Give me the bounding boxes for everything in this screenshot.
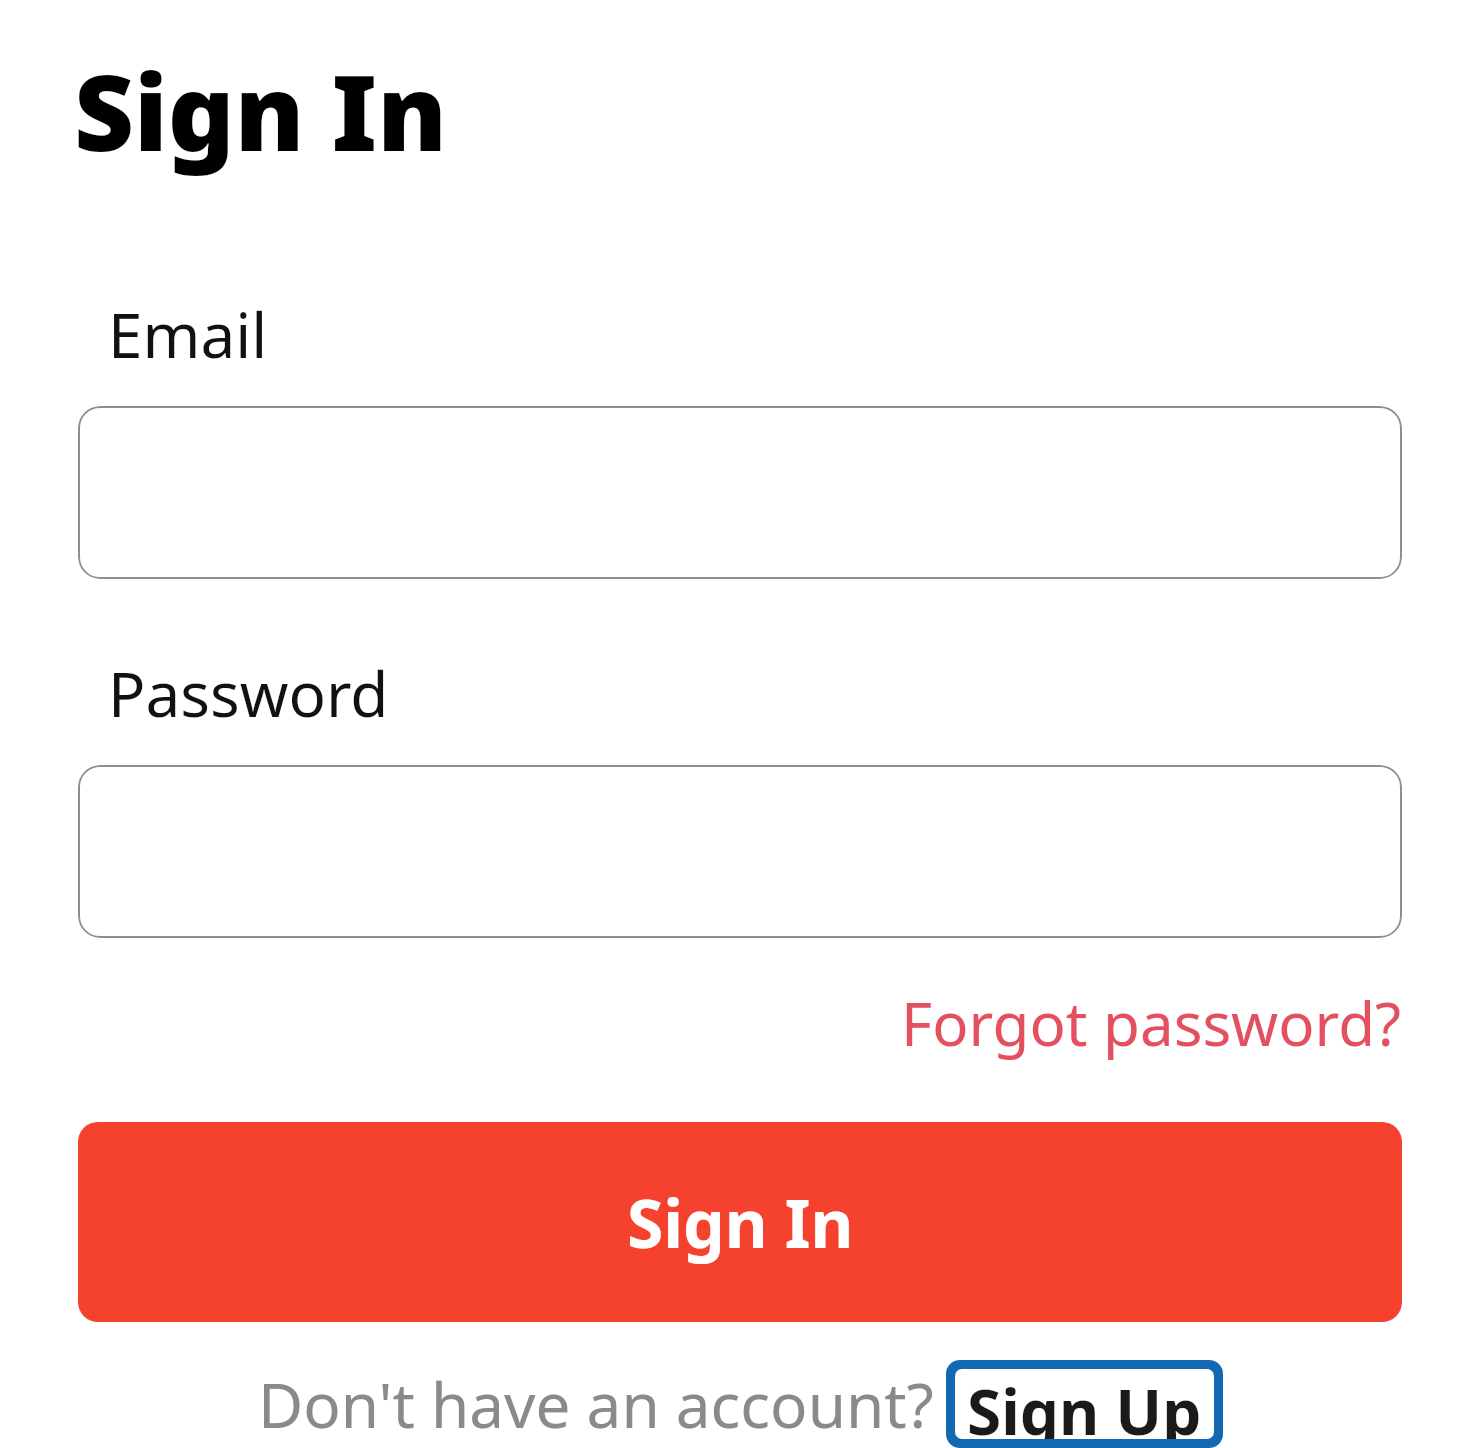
staticText: Email [108, 292, 268, 376]
button[interactable]: Sign In [78, 1122, 1402, 1322]
staticText: Don't have an account? [258, 1362, 934, 1446]
staticText: Sign In [74, 40, 447, 182]
button[interactable]: Email input field [78, 406, 1402, 579]
staticText: Forgot password? [901, 982, 1402, 1064]
staticText: Sign In [627, 1177, 854, 1267]
staticText: Password [108, 651, 389, 735]
staticText: Sign Up [967, 1369, 1202, 1439]
button[interactable]: Password input field [78, 765, 1402, 938]
button[interactable]: Forgot password? [901, 982, 1402, 1064]
button[interactable]: Sign Up [955, 1369, 1214, 1439]
